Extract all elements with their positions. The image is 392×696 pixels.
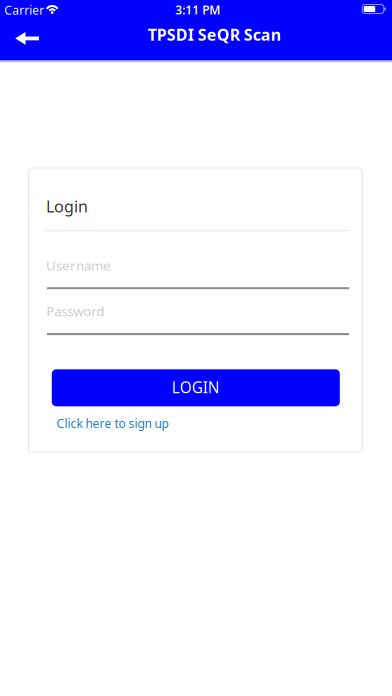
button[interactable]: Click here to sign up xyxy=(56,415,168,431)
staticText: 3:11 PM xyxy=(175,2,220,18)
staticText: Login xyxy=(46,196,88,217)
staticText: LOGIN xyxy=(172,377,220,398)
button[interactable]: Password xyxy=(47,295,349,337)
staticText: Password xyxy=(46,302,104,320)
staticText: TPSDI SeQR Scan xyxy=(148,24,281,45)
button[interactable]: LOGIN xyxy=(52,369,340,406)
button[interactable]: Username xyxy=(47,249,349,291)
button[interactable] xyxy=(5,23,49,53)
staticText: Username xyxy=(46,256,111,274)
staticText: Click here to sign up xyxy=(56,415,168,431)
staticText: Carrier xyxy=(4,2,44,18)
